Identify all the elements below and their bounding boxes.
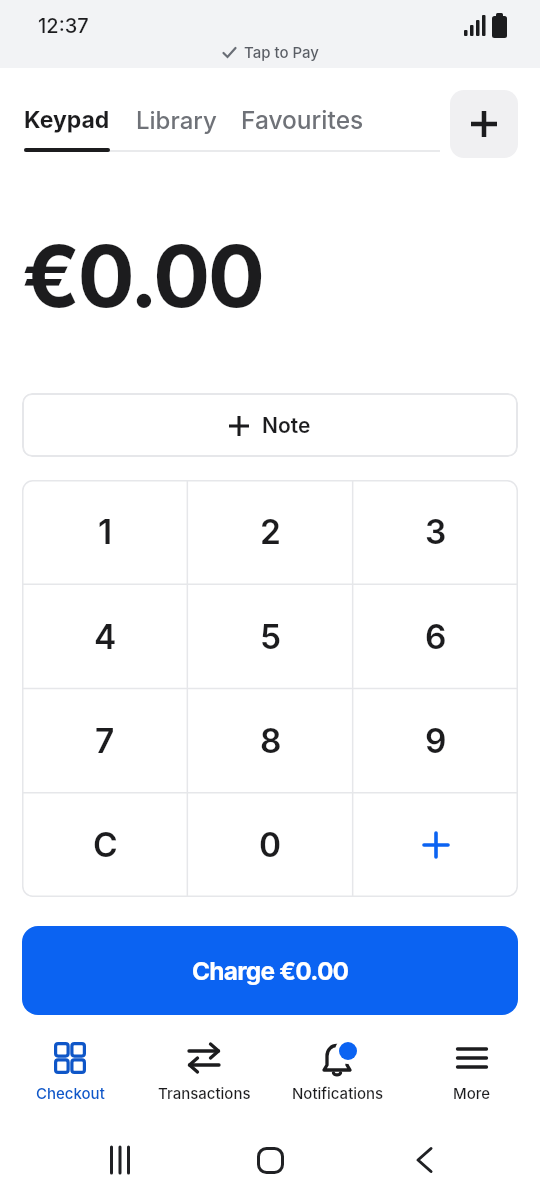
staticText: 9	[425, 721, 447, 762]
staticText: €0.00	[22, 225, 263, 328]
button[interactable]	[450, 90, 518, 158]
button[interactable]: 9	[353, 689, 518, 793]
staticText: 8	[260, 721, 282, 762]
button[interactable]: Checkout	[15, 1038, 125, 1112]
button[interactable]: 0	[188, 793, 353, 897]
staticText: Notifications	[292, 1084, 384, 1102]
staticText: Note	[262, 413, 311, 438]
button[interactable]: 1	[22, 480, 188, 585]
staticText: Checkout	[36, 1084, 105, 1102]
staticText: 2	[260, 512, 281, 553]
staticText: C	[93, 825, 118, 866]
staticText: 5	[260, 617, 282, 658]
staticText: 3	[425, 512, 447, 553]
staticText: 1	[98, 512, 113, 553]
button[interactable]: Keypad	[24, 106, 110, 134]
button[interactable]	[96, 1136, 144, 1184]
staticText: 0	[259, 825, 282, 866]
button[interactable]: Favourites	[241, 105, 364, 135]
button[interactable]: Library	[136, 106, 217, 135]
button[interactable]: 8	[188, 689, 353, 793]
button[interactable]: More	[417, 1038, 527, 1112]
button[interactable]: 7	[22, 689, 188, 793]
button[interactable]: 3	[353, 480, 518, 585]
button[interactable]: C	[22, 793, 188, 897]
button[interactable]: 5	[188, 585, 353, 689]
staticText: 12:37	[38, 14, 89, 38]
staticText: 4	[94, 617, 117, 658]
button[interactable]	[400, 1136, 448, 1184]
button[interactable]	[246, 1136, 294, 1184]
staticText: Charge €0.00	[192, 956, 349, 986]
staticText: 6	[425, 617, 447, 658]
button[interactable]: Transactions	[149, 1038, 259, 1112]
staticText: Keypad	[24, 106, 110, 134]
button[interactable]: 6	[353, 585, 518, 689]
staticText: Favourites	[241, 105, 364, 135]
staticText: Transactions	[158, 1084, 251, 1102]
button[interactable]: 4	[22, 585, 188, 689]
button[interactable]: 2	[188, 480, 353, 585]
staticText: 7	[95, 721, 115, 762]
staticText: More	[453, 1084, 491, 1102]
button[interactable]: Note	[22, 393, 518, 457]
staticText: Library	[136, 106, 217, 135]
button[interactable]: Notifications	[283, 1038, 393, 1112]
staticText: Tap to Pay	[244, 43, 319, 61]
button[interactable]	[353, 793, 518, 897]
button[interactable]: Charge €0.00	[22, 926, 518, 1015]
